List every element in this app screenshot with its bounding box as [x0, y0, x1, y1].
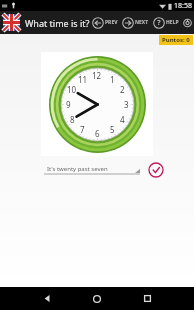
- button[interactable]: Puntos: 0: [162, 36, 190, 44]
- staticText: 3: [124, 99, 129, 110]
- staticText: 9: [66, 99, 71, 110]
- staticText: PREV: [105, 19, 118, 26]
- staticText: 4: [120, 114, 125, 125]
- button[interactable]: NEXT: [120, 11, 151, 34]
- button[interactable]: HELP: [151, 11, 181, 34]
- button[interactable]: Recent apps: [130, 287, 164, 310]
- button[interactable]: Check answer: [148, 162, 164, 178]
- staticText: HELP: [166, 19, 179, 26]
- staticText: NEXT: [135, 19, 149, 26]
- button[interactable]: App icon: [3, 14, 20, 31]
- staticText: 8: [70, 114, 75, 125]
- button[interactable]: PREV: [90, 11, 120, 34]
- staticText: 12: [92, 70, 102, 81]
- button[interactable]: Back: [30, 287, 64, 310]
- button[interactable]: It's twenty past seven: [44, 165, 140, 175]
- staticText: 2: [120, 84, 125, 95]
- staticText: Puntos: 0: [162, 36, 190, 44]
- staticText: 10: [67, 84, 77, 95]
- staticText: 6: [95, 128, 100, 139]
- staticText: 7: [80, 124, 85, 135]
- staticText: What time is it?: [25, 17, 90, 29]
- staticText: 18:58: [174, 1, 192, 11]
- staticText: 1: [110, 74, 115, 85]
- staticText: 11: [78, 74, 88, 85]
- button[interactable]: HOME: [181, 11, 194, 34]
- staticText: It's twenty past seven: [47, 165, 135, 173]
- staticText: 5: [110, 124, 115, 135]
- button[interactable]: Home: [80, 287, 114, 310]
- staticText: ?: [157, 18, 161, 28]
